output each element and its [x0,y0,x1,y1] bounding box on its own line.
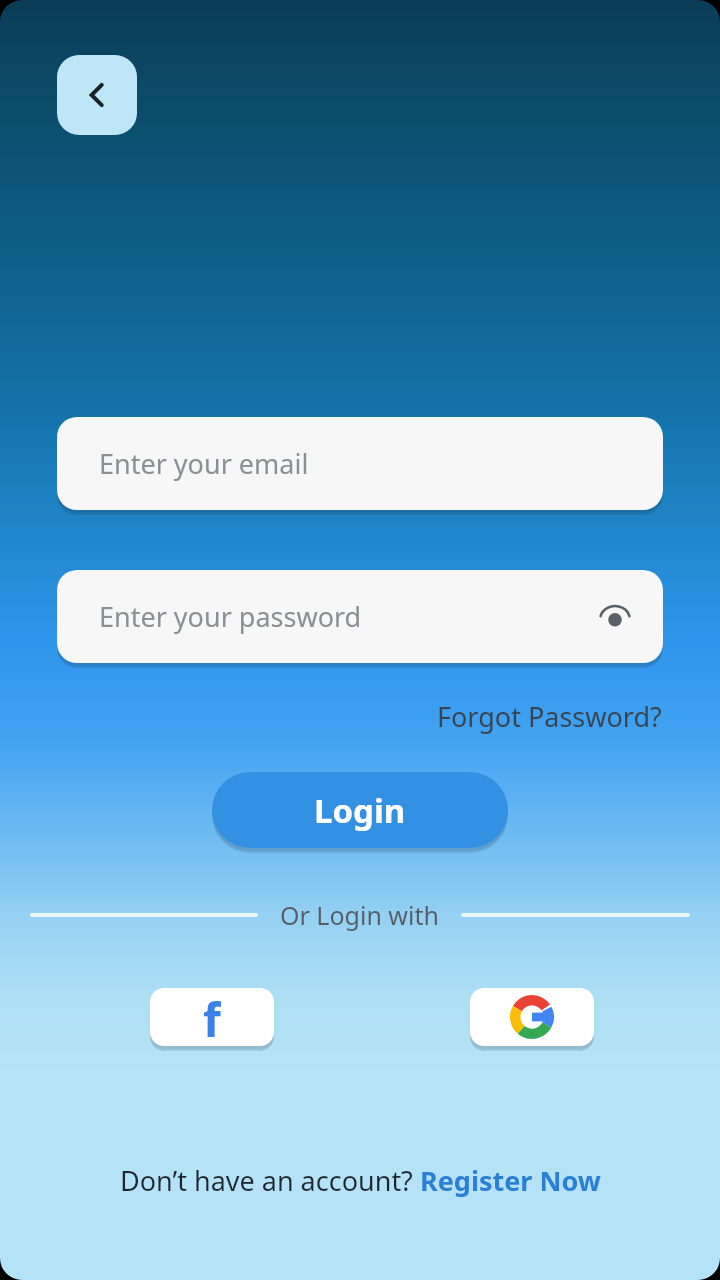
staticText: Forgot Password? [437,698,662,735]
button[interactable]: Enter your password [57,570,663,663]
staticText: Register Now [420,1162,601,1199]
staticText: Enter your password [99,598,362,635]
staticText: Enter your email [99,445,309,482]
staticText: Login [314,788,406,833]
button[interactable]: Login with Facebook [150,988,274,1046]
button[interactable]: Enter your email [57,417,663,510]
button[interactable]: Back [57,55,137,135]
button[interactable]: Forgot Password? [380,692,672,740]
staticText: f [203,988,221,1046]
button[interactable]: Register Now [420,1162,601,1199]
staticText: Or Login with [280,898,439,932]
button[interactable]: Show password [591,593,639,641]
staticText: Don’t have an account? [120,1162,420,1199]
button[interactable]: Login [212,772,508,848]
button[interactable]: Login with Google [470,988,594,1046]
